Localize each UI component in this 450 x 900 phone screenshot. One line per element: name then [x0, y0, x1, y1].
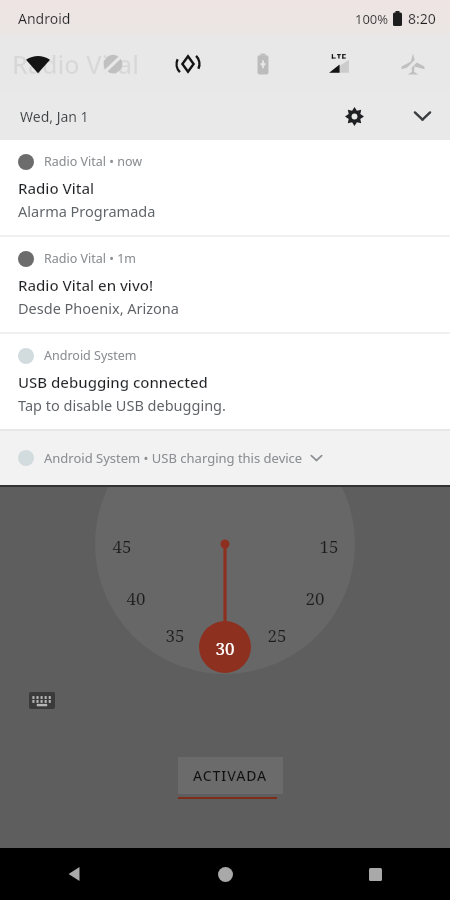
staticText: Radio Vital • 1m — [44, 250, 137, 267]
staticText: 15 — [319, 535, 339, 558]
staticText: Wed, Jan 1 — [20, 107, 89, 126]
button[interactable]: ACTIVADA — [178, 757, 283, 794]
button[interactable]: Switch to keyboard input — [27, 688, 57, 712]
button[interactable]: Do not disturb — [92, 43, 134, 85]
button[interactable]: Collapse — [400, 94, 444, 138]
button[interactable]: Home — [200, 849, 250, 899]
staticText: USB debugging connected — [18, 372, 208, 392]
button[interactable]: Android System — [0, 334, 450, 429]
staticText: 100% — [355, 10, 389, 28]
button[interactable]: Auto-rotate — [167, 43, 209, 85]
staticText: 25 — [267, 624, 287, 647]
button[interactable]: Wi-Fi — [17, 43, 59, 85]
staticText: Radio Vital • now — [44, 153, 143, 170]
button[interactable]: Mobile data — [317, 43, 359, 85]
staticText: Tap to disable USB debugging. — [18, 395, 226, 415]
staticText: 35 — [165, 624, 185, 647]
button[interactable]: Radio Vital • now — [0, 140, 450, 235]
staticText: Radio Vital — [18, 178, 95, 198]
button[interactable]: Radio Vital • 1m — [0, 237, 450, 332]
button[interactable]: Settings — [332, 94, 376, 138]
staticText: Android System • USB charging this devic… — [44, 449, 303, 467]
staticText: ACTIVADA — [193, 766, 268, 785]
button[interactable]: Android System • USB charging this devic… — [0, 431, 450, 485]
staticText: 40 — [126, 587, 146, 610]
button[interactable]: Recent apps — [350, 849, 400, 899]
staticText: Android — [18, 9, 71, 28]
staticText: Desde Phoenix, Arizona — [18, 298, 179, 318]
button[interactable]: Airplane mode — [392, 43, 434, 85]
staticText: Alarma Programada — [18, 201, 156, 221]
staticText: 45 — [112, 535, 132, 558]
button[interactable]: Back — [50, 849, 100, 899]
staticText: Radio Vital en vivo! — [18, 275, 154, 295]
staticText: 8:20 — [408, 9, 436, 28]
staticText: Radio Vital — [12, 47, 139, 81]
button[interactable]: Battery saver — [242, 43, 284, 85]
staticText: 20 — [305, 587, 325, 610]
staticText: 30 — [215, 637, 235, 660]
staticText: Android System — [44, 347, 137, 364]
